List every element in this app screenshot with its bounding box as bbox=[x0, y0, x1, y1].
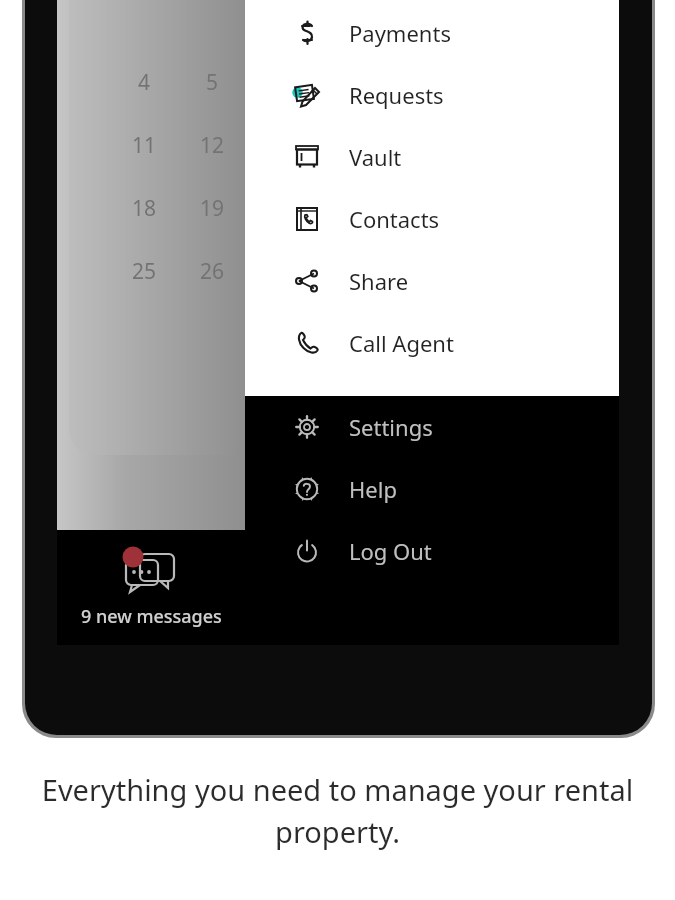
button[interactable]: Messages bbox=[57, 530, 245, 645]
staticText: 4 bbox=[138, 68, 151, 97]
other: Messages bbox=[122, 548, 180, 592]
staticText: 12 bbox=[200, 131, 225, 160]
button[interactable]: Settings bbox=[245, 396, 619, 458]
button[interactable]: Requests bbox=[245, 64, 619, 126]
staticText: Share bbox=[349, 266, 409, 296]
button[interactable]: Vault bbox=[245, 126, 619, 188]
staticText: Payments bbox=[349, 18, 451, 48]
button[interactable]: Payments bbox=[245, 2, 619, 64]
staticText: Everything you need to manage your renta… bbox=[40, 770, 635, 851]
staticText: 11 bbox=[132, 131, 157, 160]
staticText: 9 new messages bbox=[81, 604, 222, 629]
staticText: Requests bbox=[349, 80, 444, 110]
staticText: Help bbox=[349, 474, 397, 504]
staticText: Call Agent bbox=[349, 328, 454, 358]
staticText: 25 bbox=[132, 257, 157, 286]
staticText: 5 bbox=[206, 68, 219, 97]
button[interactable]: Contacts bbox=[245, 188, 619, 250]
staticText: 18 bbox=[132, 194, 157, 223]
button[interactable]: Help bbox=[245, 458, 619, 520]
staticText: 19 bbox=[200, 194, 225, 223]
staticText: 26 bbox=[200, 257, 225, 286]
staticText: Contacts bbox=[349, 204, 440, 234]
staticText: Settings bbox=[349, 412, 433, 442]
staticText: Log Out bbox=[349, 536, 432, 566]
button[interactable]: Share bbox=[245, 250, 619, 312]
staticText: Vault bbox=[349, 142, 402, 172]
button[interactable]: Log Out bbox=[245, 520, 619, 582]
button[interactable]: Call Agent bbox=[245, 312, 619, 374]
